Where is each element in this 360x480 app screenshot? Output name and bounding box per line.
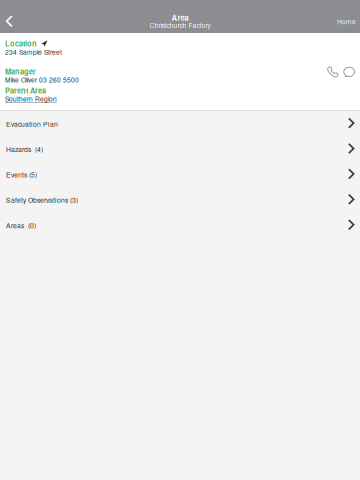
staticText: Safety Observations (3) xyxy=(6,195,78,205)
button[interactable]: Events (5) xyxy=(0,162,360,187)
button[interactable]: Hazards (4) xyxy=(0,136,360,162)
button[interactable]: Message xyxy=(343,67,355,77)
staticText: Christchurch Factory xyxy=(149,20,210,30)
staticText: Hazards (4) xyxy=(6,144,43,154)
staticText: Mike Oliver 03 260 5500 xyxy=(5,75,79,84)
button[interactable]: Safety Observations (3) xyxy=(0,187,360,213)
staticText: Areas (0) xyxy=(6,220,36,230)
button[interactable]: Evacuation Plan xyxy=(0,111,360,136)
staticText: Parent Area xyxy=(5,85,46,96)
button[interactable]: Call xyxy=(327,66,339,78)
button[interactable]: Home xyxy=(333,8,360,34)
staticText: Home xyxy=(337,17,356,26)
button[interactable]: Back xyxy=(0,8,20,34)
staticText: Area xyxy=(171,12,188,23)
staticText: Events (5) xyxy=(6,170,37,179)
staticText: Southern Region xyxy=(5,94,57,103)
staticText: Location xyxy=(5,38,37,49)
staticText: Evacuation Plan xyxy=(6,119,58,128)
staticText: Manager xyxy=(5,66,36,77)
button[interactable]: Areas (0) xyxy=(0,213,360,238)
staticText: 234 Sample Street xyxy=(5,47,62,56)
